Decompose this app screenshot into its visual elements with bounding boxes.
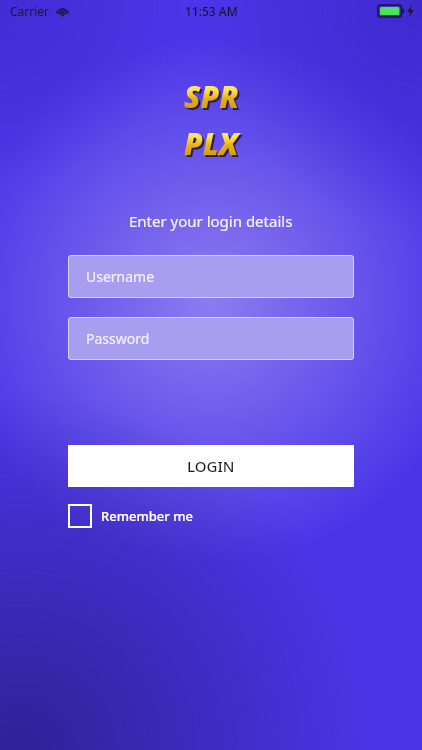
staticText: SPR: [186, 78, 241, 119]
button[interactable]: Username: [68, 255, 354, 298]
staticText: PLX: [184, 123, 239, 164]
staticText: Username: [86, 267, 155, 286]
staticText: SPR: [184, 76, 239, 117]
staticText: 11:53 AM: [185, 3, 238, 19]
staticText: Carrier: [10, 3, 50, 19]
staticText: LOGIN: [187, 456, 235, 476]
staticText: Remember me: [101, 507, 193, 525]
staticText: Enter your login details: [129, 211, 293, 231]
staticText: Password: [86, 329, 150, 348]
button[interactable]: Remember me: [68, 503, 193, 529]
button[interactable]: LOGIN: [68, 445, 354, 487]
staticText: PLX: [186, 125, 241, 166]
button[interactable]: Password: [68, 317, 354, 360]
